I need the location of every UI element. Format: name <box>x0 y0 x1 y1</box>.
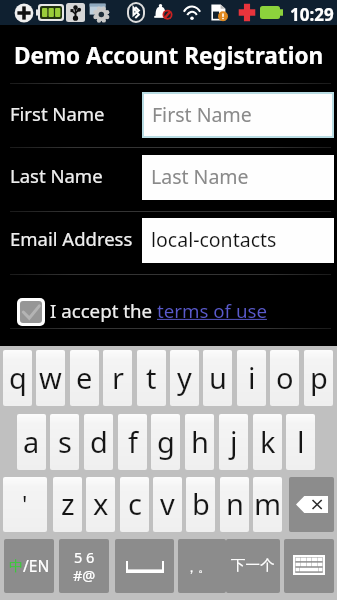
button[interactable]: i <box>237 350 266 406</box>
button[interactable]: Comma and period <box>178 539 226 593</box>
button[interactable]: t <box>137 350 166 406</box>
staticText: 下一个 <box>231 556 275 574</box>
button[interactable]: terms of use <box>157 298 267 323</box>
button[interactable]: x <box>86 477 115 532</box>
button[interactable]: q <box>3 350 32 406</box>
staticText: o <box>276 358 294 397</box>
staticText: Demo Account Registration <box>14 40 324 71</box>
staticText: g <box>157 422 175 461</box>
staticText: 5 6 <box>74 547 95 567</box>
button[interactable]: u <box>203 350 232 406</box>
button[interactable]: h <box>185 414 214 470</box>
button[interactable]: v <box>153 477 182 532</box>
staticText: First Name <box>10 101 105 126</box>
staticText: r <box>112 358 124 397</box>
staticText: h <box>191 422 209 461</box>
button[interactable]: local-contacts <box>142 218 334 263</box>
button[interactable]: o <box>270 350 299 406</box>
button[interactable]: m <box>253 477 282 532</box>
button[interactable]: l <box>286 414 315 470</box>
staticText: t <box>146 358 157 397</box>
button[interactable]: Backspace <box>289 477 334 532</box>
staticText: i <box>248 358 256 397</box>
staticText: 中 <box>9 558 23 576</box>
staticText: j <box>230 422 238 461</box>
staticText: x <box>93 484 109 523</box>
staticText: w <box>39 358 62 397</box>
staticText: y <box>177 358 192 397</box>
button[interactable]: r <box>103 350 132 406</box>
button[interactable]: j <box>219 414 248 470</box>
button[interactable]: f <box>118 414 147 470</box>
staticText: c <box>128 484 142 523</box>
button[interactable]: d <box>84 414 113 470</box>
staticText: Last Name <box>10 163 103 188</box>
staticText: /EN <box>23 555 50 576</box>
button[interactable]: y <box>170 350 199 406</box>
staticText: u <box>209 358 227 397</box>
staticText: Email Address <box>10 226 133 251</box>
staticText: k <box>260 422 276 461</box>
staticText: 10:29 <box>290 3 334 26</box>
button[interactable]: z <box>53 477 82 532</box>
staticText: v <box>160 484 175 523</box>
staticText: #@ <box>73 565 96 585</box>
button[interactable]: b <box>186 477 215 532</box>
button[interactable]: k <box>253 414 282 470</box>
button[interactable]: Last Name <box>142 155 334 200</box>
button[interactable]: a <box>17 414 46 470</box>
button[interactable]: Next field <box>226 539 280 593</box>
staticText: local-contacts <box>151 226 277 253</box>
staticText: f <box>128 422 138 461</box>
button[interactable]: e <box>70 350 99 406</box>
button[interactable]: p <box>304 350 333 406</box>
button[interactable]: Switch language <box>4 539 54 593</box>
staticText: b <box>192 484 210 523</box>
button[interactable]: I accept the terms of use checkbox <box>20 301 42 323</box>
staticText: I accept the <box>50 298 157 323</box>
button[interactable]: n <box>220 477 249 532</box>
button[interactable]: Space <box>115 539 174 593</box>
staticText: q <box>9 358 27 397</box>
staticText: ' <box>22 487 28 520</box>
staticText: z <box>61 484 75 523</box>
staticText: m <box>254 484 282 523</box>
staticText: a <box>23 422 40 461</box>
button[interactable]: s <box>50 414 79 470</box>
staticText: ，。 <box>185 559 211 575</box>
staticText: n <box>226 484 244 523</box>
staticText: e <box>76 358 93 397</box>
staticText: s <box>58 422 72 461</box>
staticText: First Name <box>152 101 252 128</box>
staticText: d <box>90 422 108 461</box>
button[interactable]: w <box>36 350 65 406</box>
staticText: l <box>297 422 305 461</box>
button[interactable]: First Name <box>144 94 332 136</box>
button[interactable]: g <box>151 414 180 470</box>
button[interactable]: ' <box>3 477 47 532</box>
button[interactable]: Hide keyboard <box>284 539 334 593</box>
staticText: p <box>310 358 328 397</box>
staticText: Last Name <box>151 163 249 190</box>
button[interactable]: c <box>120 477 149 532</box>
button[interactable]: Symbols <box>59 539 109 593</box>
